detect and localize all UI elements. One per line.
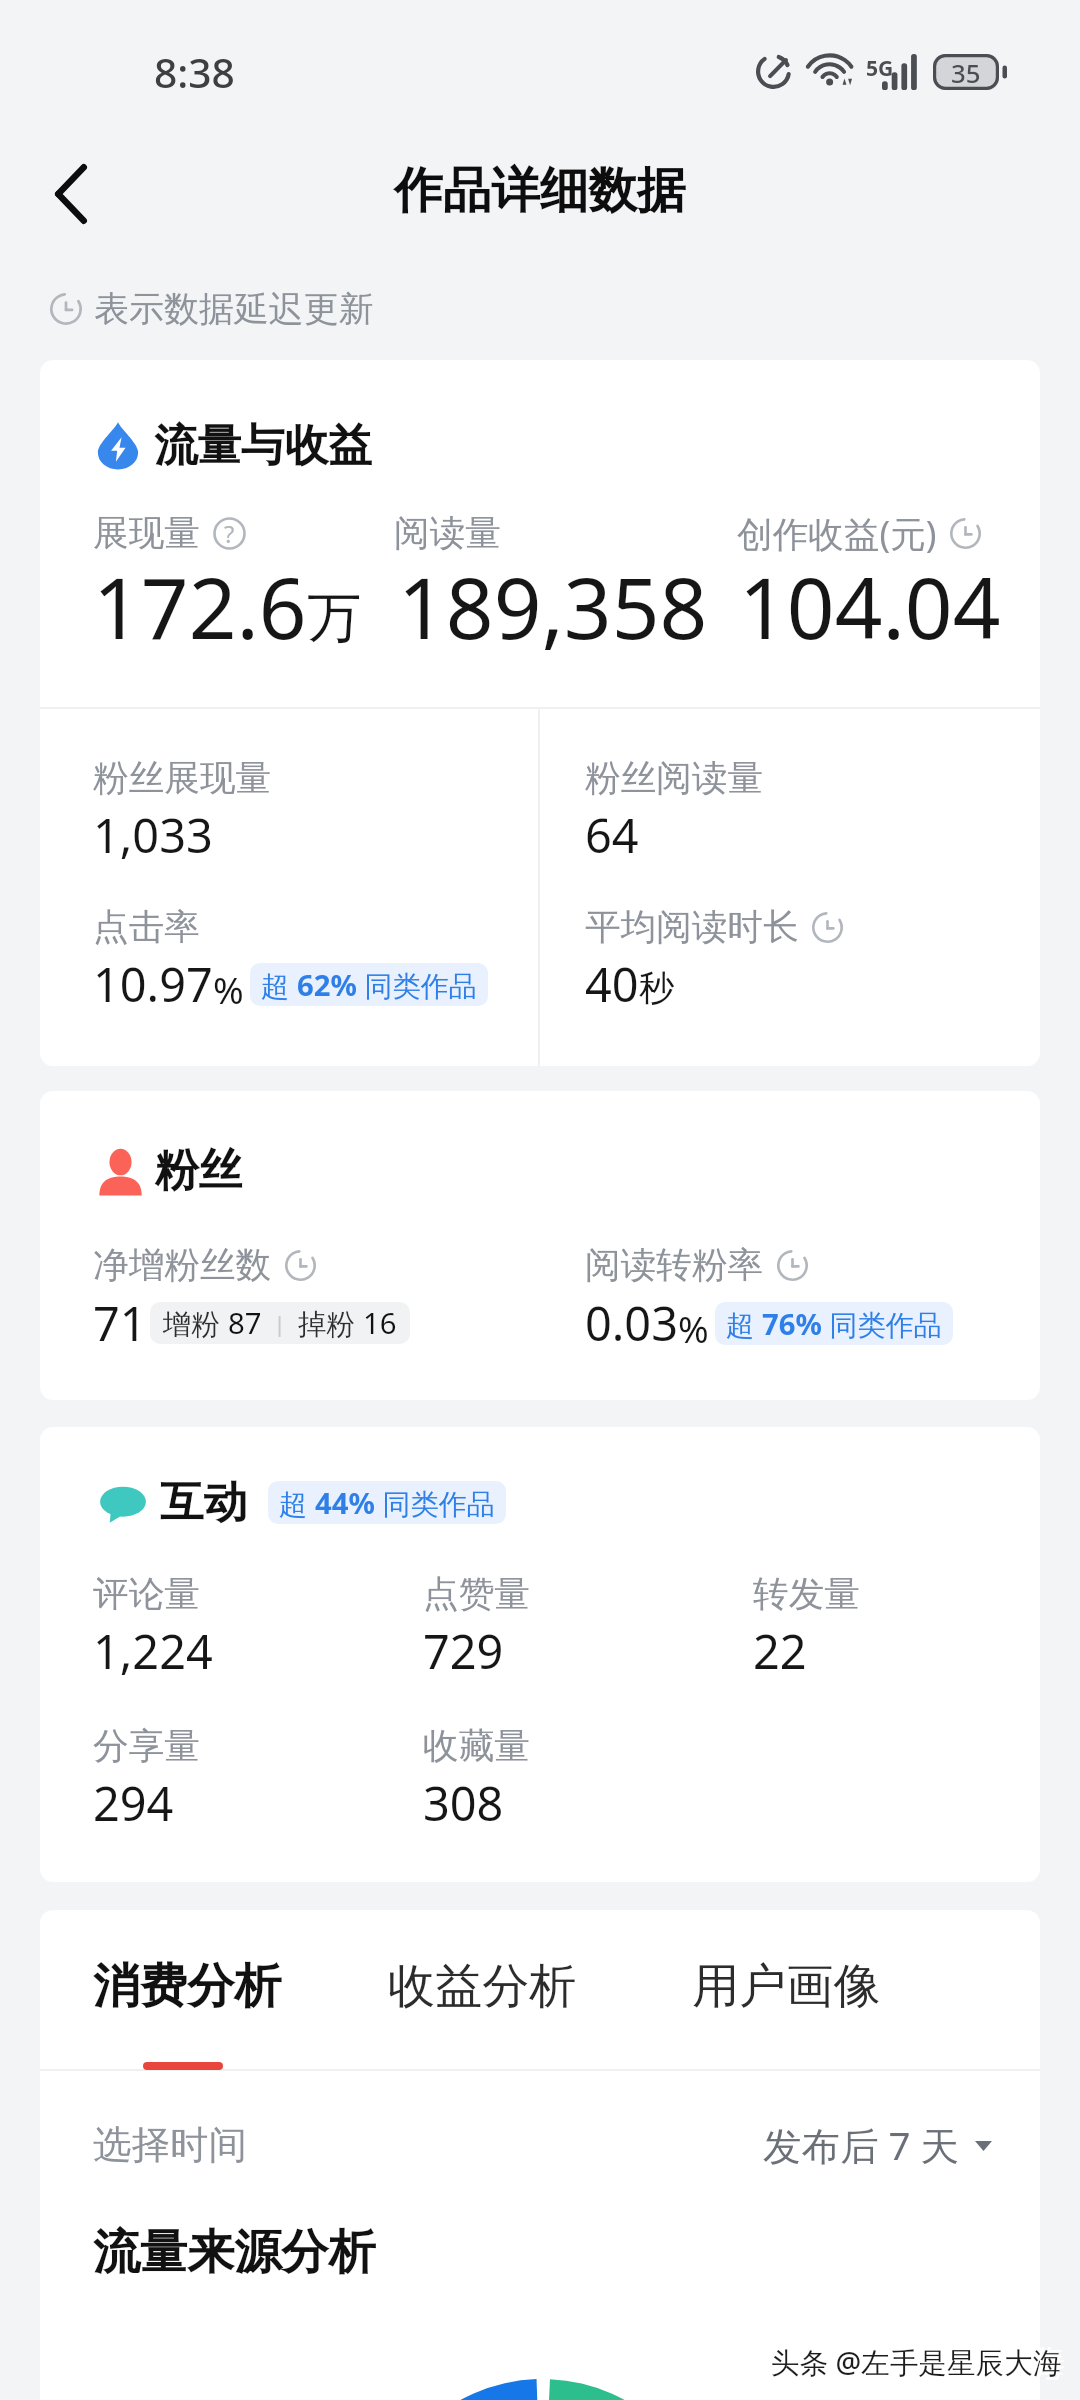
staticText: 秒 [639, 966, 675, 1010]
staticText: 阅读量 [394, 511, 501, 556]
staticText: 22 [753, 1619, 807, 1683]
staticText: 64 [585, 803, 639, 867]
staticText: % [678, 1303, 709, 1353]
staticText: 点赞量 [423, 1572, 530, 1617]
staticText: 阅读转粉率 [585, 1243, 764, 1288]
staticText: 同类作品 [357, 966, 477, 1004]
staticText: 超 [261, 966, 297, 1004]
staticText: 头条 @左手是星辰大海 [771, 2342, 1062, 2381]
staticText: 互动 [160, 1475, 248, 1530]
staticText: 表示数据延迟更新 [94, 287, 374, 331]
staticText: 点击率 [93, 905, 200, 950]
staticText: 16 [363, 1303, 397, 1343]
staticText: 粉丝 [155, 1143, 243, 1198]
staticText: 189,358 [398, 550, 708, 664]
staticText: 增粉 [163, 1304, 228, 1343]
staticText: 展现量 [93, 511, 200, 556]
staticText: ? [224, 518, 235, 550]
staticText: 净增粉丝数 [93, 1243, 272, 1288]
staticText: 平均阅读时长 [585, 905, 799, 950]
staticText: 35 [951, 55, 981, 90]
staticText: 头条 @左手是星辰大海 [774, 2339, 1065, 2378]
staticText: 消费分析 [93, 1957, 282, 2016]
staticText: 1,224 [93, 1619, 213, 1683]
staticText: 40 [585, 952, 639, 1016]
staticText: 104.04 [739, 550, 1001, 664]
staticText: 分享量 [93, 1724, 200, 1769]
staticText: 用户画像 [692, 1957, 881, 2016]
button[interactable]: 消费分析 [93, 1957, 282, 2016]
staticText: 71 [93, 1291, 147, 1355]
button[interactable]: 发布后 7 天 [763, 2119, 992, 2172]
staticText: 同类作品 [375, 1484, 495, 1522]
staticText: 头条 @左手是星辰大海 [768, 2345, 1059, 2384]
staticText: 头条 @左手是星辰大海 [774, 2345, 1065, 2384]
staticText: 超 [279, 1484, 315, 1522]
staticText: 1,033 [93, 803, 213, 867]
staticText: 流量来源分析 [93, 2223, 376, 2282]
staticText: 粉丝阅读量 [585, 756, 764, 801]
staticText: 308 [423, 1771, 504, 1835]
staticText: % [213, 964, 244, 1014]
button[interactable]: 收益分析 [388, 1957, 577, 2016]
staticText: 0.03 [585, 1291, 678, 1355]
staticText: 172.6 [93, 550, 307, 664]
staticText: 44% [315, 1483, 375, 1523]
staticText: 转发量 [753, 1572, 860, 1617]
staticText: 发布后 7 天 [763, 2119, 960, 2172]
staticText: 729 [423, 1619, 504, 1683]
staticText: 头条 @左手是星辰大海 [768, 2339, 1059, 2378]
staticText: 选择时间 [93, 2121, 247, 2170]
staticText: 万 [307, 584, 361, 652]
staticText: 同类作品 [822, 1305, 942, 1343]
staticText: 评论量 [93, 1572, 200, 1617]
staticText: 作品详细数据 [394, 160, 686, 221]
staticText: 创作收益(元) [737, 509, 937, 558]
staticText: 87 [228, 1303, 262, 1343]
staticText: 超 [726, 1305, 762, 1343]
staticText: 8:38 [154, 44, 235, 99]
staticText: 10.97 [93, 952, 213, 1016]
staticText: 流量与收益 [154, 418, 372, 473]
button[interactable]: 用户画像 [692, 1957, 881, 2016]
staticText: 62% [297, 965, 357, 1005]
staticText: 76% [762, 1304, 822, 1344]
button[interactable]: Back [22, 145, 119, 242]
staticText: | [262, 1308, 298, 1338]
staticText: 掉粉 [298, 1304, 363, 1343]
staticText: 294 [93, 1771, 174, 1835]
staticText: 粉丝展现量 [93, 756, 272, 801]
staticText: 收藏量 [423, 1724, 530, 1769]
staticText: 5G [866, 53, 894, 82]
staticText: 收益分析 [388, 1957, 577, 2016]
